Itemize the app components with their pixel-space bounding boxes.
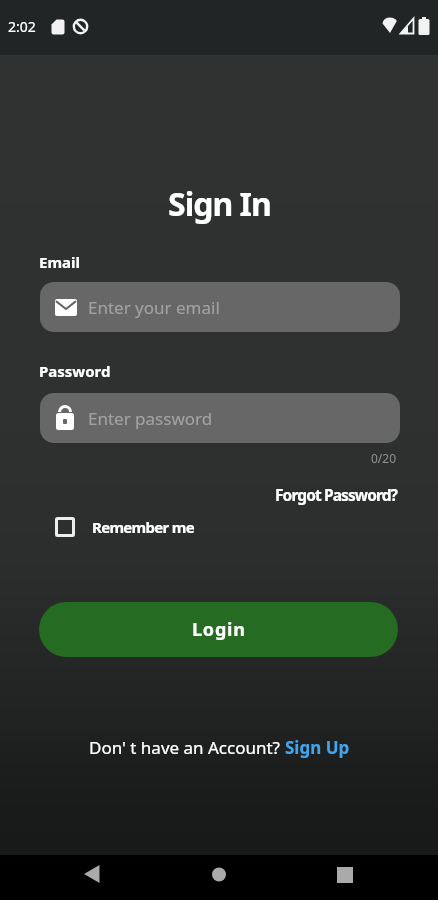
staticText: 2:02 bbox=[8, 17, 36, 36]
staticText: 0/20 bbox=[371, 450, 397, 466]
staticText: Password bbox=[39, 361, 111, 381]
button[interactable]: Enter your email bbox=[40, 282, 400, 332]
button[interactable]: Remember me bbox=[55, 517, 194, 537]
staticText: Remember me bbox=[92, 517, 194, 537]
staticText: Don' t have an Account? bbox=[89, 736, 285, 759]
button[interactable]: Login bbox=[39, 602, 398, 657]
button[interactable]: Enter password bbox=[40, 393, 400, 443]
staticText: Email bbox=[39, 252, 80, 272]
button[interactable]: Sign Up bbox=[285, 736, 350, 759]
staticText: Sign In bbox=[168, 182, 271, 226]
button[interactable]: Forgot Password? bbox=[275, 484, 398, 505]
staticText: Enter password bbox=[88, 407, 213, 430]
staticText: Enter your email bbox=[88, 296, 220, 319]
staticText: Login bbox=[192, 617, 246, 642]
